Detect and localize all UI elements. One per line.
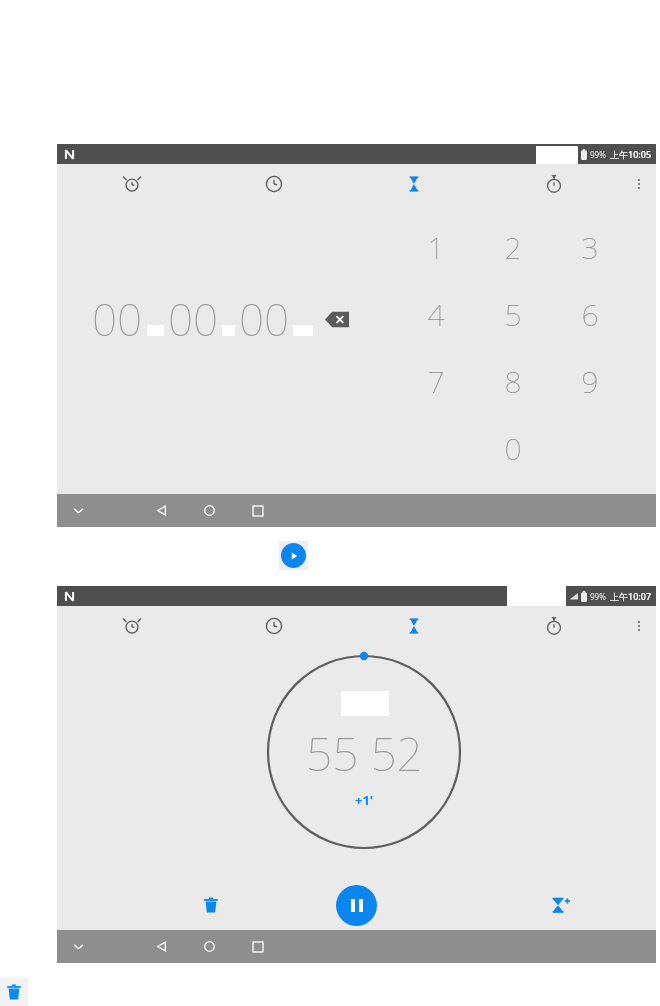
button[interactable]: Pause timer — [336, 885, 377, 926]
button[interactable]: Clock — [254, 606, 294, 646]
staticText: 6 — [581, 294, 599, 335]
staticText: 4 — [427, 294, 445, 335]
button[interactable]: 3 — [551, 214, 628, 281]
button[interactable]: Recent apps — [241, 930, 274, 963]
button[interactable]: More options — [619, 164, 659, 204]
button[interactable]: Recent apps — [241, 494, 274, 527]
button[interactable]: Home — [193, 930, 226, 963]
staticText: 上午10:07 — [610, 590, 652, 602]
staticText: 8 — [504, 361, 522, 402]
staticText: +1' — [355, 791, 374, 809]
button[interactable]: Backspace — [325, 311, 349, 328]
staticText: 1 — [427, 227, 445, 268]
button[interactable]: 8 — [474, 348, 551, 415]
button[interactable]: 2 — [474, 214, 551, 281]
button[interactable]: Hide — [62, 930, 95, 963]
staticText: 99% — [590, 149, 606, 160]
staticText: 00 — [92, 289, 143, 349]
button[interactable]: Alarm — [112, 606, 152, 646]
staticText: 9 — [581, 361, 599, 402]
staticText: 0 — [504, 428, 522, 469]
button[interactable]: Add timer — [537, 881, 585, 929]
staticText: 上午10:05 — [610, 148, 652, 160]
button[interactable]: Alarm — [112, 164, 152, 204]
staticText: 2 — [504, 227, 522, 268]
button[interactable]: 4 — [397, 281, 474, 348]
button[interactable]: Back — [145, 494, 178, 527]
staticText: 55 52 — [306, 722, 423, 785]
button[interactable]: Stopwatch — [534, 164, 574, 204]
button[interactable]: 7 — [397, 348, 474, 415]
button[interactable]: Start timer — [281, 543, 306, 568]
button[interactable]: 9 — [551, 348, 628, 415]
button[interactable]: Back — [145, 930, 178, 963]
button[interactable]: Delete timer — [187, 881, 235, 929]
button[interactable]: Home — [193, 494, 226, 527]
button[interactable]: 6 — [551, 281, 628, 348]
button[interactable]: Add one minute — [349, 789, 380, 811]
staticText: 3 — [581, 227, 599, 268]
staticText: 00 — [168, 289, 219, 349]
button[interactable]: More options — [619, 606, 659, 646]
button[interactable]: 0 — [474, 415, 551, 482]
button[interactable]: Hide — [62, 494, 95, 527]
staticText: 99% — [590, 591, 606, 602]
button[interactable]: Clock — [254, 164, 294, 204]
staticText: 00 — [239, 289, 290, 349]
button[interactable]: Timer — [394, 164, 434, 204]
staticText: 5 — [504, 294, 522, 335]
button[interactable]: 5 — [474, 281, 551, 348]
button[interactable]: Delete — [5, 983, 23, 1001]
button[interactable]: Stopwatch — [534, 606, 574, 646]
staticText: 7 — [427, 361, 445, 402]
button[interactable]: 1 — [397, 214, 474, 281]
button[interactable]: Timer — [394, 606, 434, 646]
